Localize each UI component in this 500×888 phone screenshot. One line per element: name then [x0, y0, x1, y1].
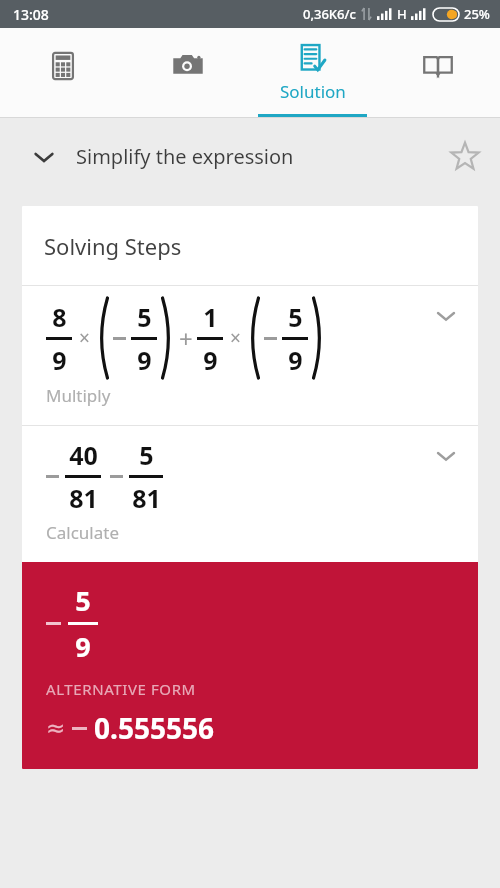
staticText: Solving Steps — [44, 231, 182, 261]
staticText: 9 — [52, 343, 67, 377]
button[interactable]: 8 — [22, 286, 478, 382]
staticText: 9 — [203, 343, 218, 377]
button[interactable]: Dictionary — [375, 28, 500, 118]
staticText: Calculate — [46, 521, 119, 544]
button[interactable]: Solution — [250, 28, 375, 118]
staticText: 5 — [75, 582, 91, 619]
staticText: 8 — [52, 300, 67, 334]
staticText: Multiply — [46, 384, 111, 407]
staticText: 5 — [288, 300, 303, 334]
staticText: 40 — [69, 438, 98, 472]
other: Expand step — [424, 434, 468, 478]
staticText: ≈ — [46, 715, 66, 742]
button[interactable]: Simplify the expression — [0, 118, 500, 195]
staticText: × — [230, 325, 241, 351]
staticText: Solution — [280, 80, 346, 103]
staticText: H — [397, 5, 407, 23]
staticText: 5 — [137, 300, 152, 334]
staticText: 1 — [203, 300, 218, 334]
staticText: 81 — [69, 481, 98, 515]
staticText: 9 — [137, 343, 152, 377]
button[interactable]: 40 — [22, 426, 478, 519]
staticText: 5 — [139, 438, 154, 472]
other: Expand step — [424, 294, 468, 338]
staticText: 25% — [464, 5, 490, 23]
button[interactable]: Camera — [125, 28, 250, 118]
staticText: 0,36K6/c — [303, 5, 356, 23]
staticText: 9 — [288, 343, 303, 377]
staticText: 13:08 — [13, 5, 49, 24]
staticText: 81 — [132, 481, 161, 515]
staticText: Simplify the expression — [76, 143, 294, 170]
staticText: + — [179, 322, 193, 355]
staticText: ALTERNATIVE FORM — [46, 679, 196, 699]
staticText: 0.555556 — [94, 709, 214, 747]
staticText: 9 — [75, 628, 91, 665]
button[interactable]: Favorite — [440, 132, 490, 182]
button[interactable]: Calculator — [0, 28, 125, 118]
staticText: × — [79, 325, 90, 351]
